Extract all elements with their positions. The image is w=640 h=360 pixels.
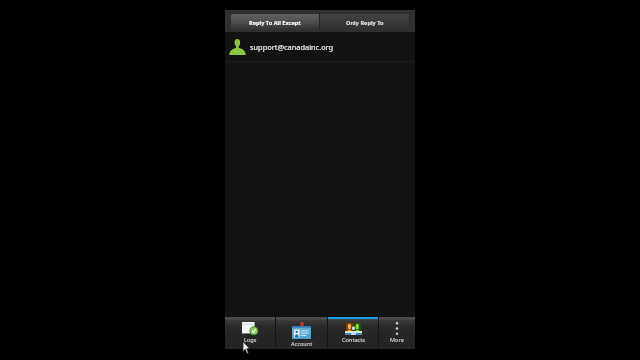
button[interactable]: Account — [276, 317, 327, 349]
button[interactable]: Reply To All Except — [231, 14, 319, 31]
staticText: support@canadainc.org — [250, 42, 334, 52]
button[interactable]: support@canadainc.org — [225, 32, 415, 61]
button[interactable]: Logs — [225, 317, 275, 349]
staticText: Contacts — [342, 336, 365, 344]
staticText: Account — [291, 340, 313, 348]
button[interactable]: More options — [379, 317, 415, 349]
staticText: More — [390, 336, 404, 344]
button[interactable]: Contacts — [328, 317, 378, 349]
staticText: Logs — [244, 336, 257, 344]
staticText: Reply To All Except — [249, 19, 301, 27]
staticText: Only Reply To — [346, 19, 384, 27]
other: More options — [395, 322, 399, 335]
button[interactable]: Only Reply To — [320, 14, 409, 31]
